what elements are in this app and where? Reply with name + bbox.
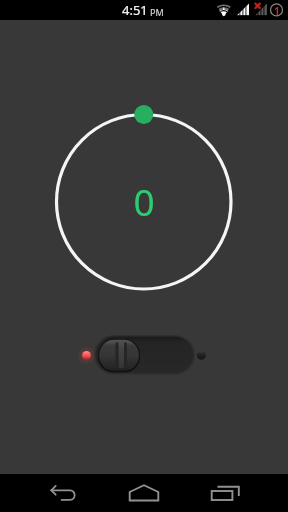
button[interactable]: Toggle [93,334,195,375]
staticText: PM [150,6,164,18]
button[interactable]: Recents [201,474,249,512]
button[interactable]: Home [120,474,168,512]
staticText: 1 [274,4,280,18]
staticText: 4:51 [122,1,148,19]
button[interactable]: Back [41,474,89,512]
staticText: 0 [0,176,288,226]
